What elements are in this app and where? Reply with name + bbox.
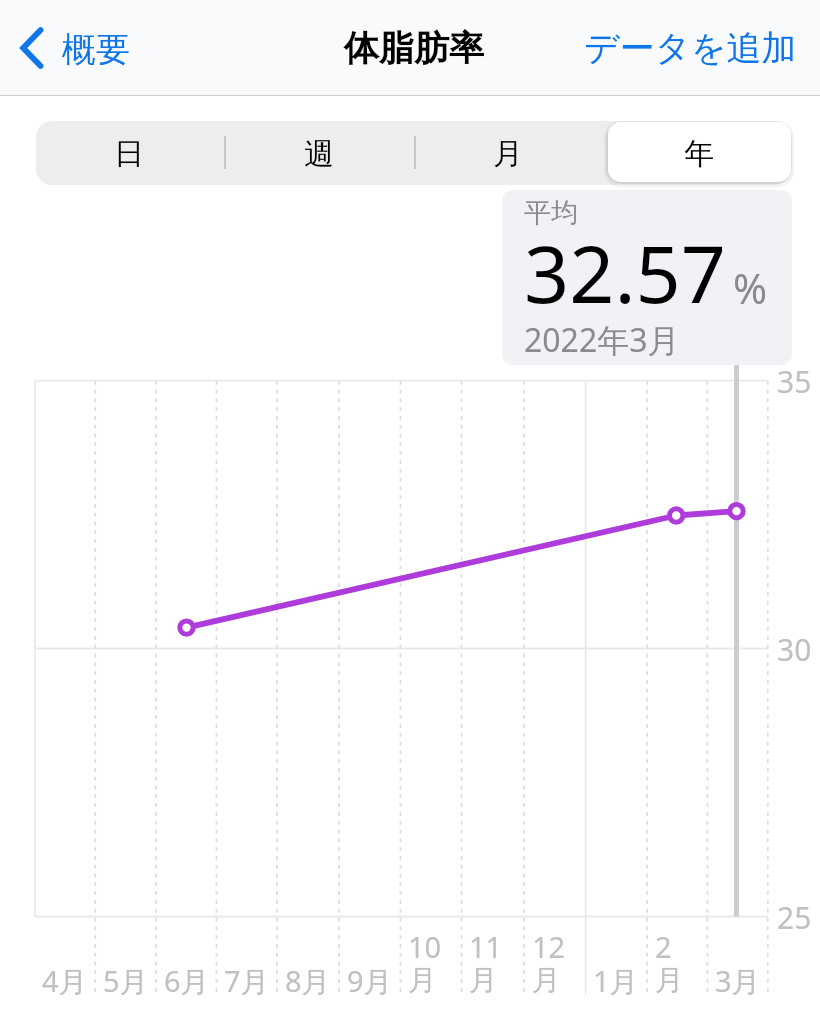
other: Back bbox=[17, 24, 53, 72]
staticText: % bbox=[733, 260, 768, 316]
button[interactable]: 週 bbox=[225, 121, 413, 185]
staticText: データを追加 bbox=[584, 26, 797, 70]
staticText: 6月 bbox=[164, 961, 220, 1024]
staticText: 11 月 bbox=[469, 927, 525, 1017]
button[interactable]: 月 bbox=[414, 121, 602, 185]
staticText: 1月 bbox=[593, 961, 649, 1024]
staticText: 平均 bbox=[524, 196, 578, 230]
staticText: 7月 bbox=[224, 961, 280, 1024]
staticText: 体脂肪率 bbox=[344, 26, 484, 70]
staticText: 25 bbox=[777, 897, 812, 938]
staticText: 30 bbox=[777, 629, 812, 670]
staticText: 3月 bbox=[715, 961, 771, 1024]
button[interactable]: 年 bbox=[605, 121, 793, 185]
button[interactable]: Back bbox=[6, 10, 142, 86]
staticText: 4月 bbox=[42, 961, 98, 1024]
staticText: 9月 bbox=[347, 961, 403, 1024]
button[interactable]: データを追加 bbox=[572, 10, 808, 86]
staticText: 日 bbox=[35, 135, 223, 173]
staticText: 年 bbox=[605, 135, 793, 173]
staticText: 8月 bbox=[285, 961, 341, 1024]
staticText: 10 月 bbox=[408, 927, 464, 1017]
staticText: 月 bbox=[414, 135, 602, 173]
staticText: 5月 bbox=[103, 961, 159, 1024]
staticText: 概要 bbox=[62, 28, 130, 71]
staticText: 2022年3月 bbox=[524, 318, 680, 362]
staticText: 週 bbox=[225, 135, 413, 173]
staticText: 12 月 bbox=[532, 927, 588, 1017]
staticText: 32.57 bbox=[524, 219, 726, 327]
staticText: 35 bbox=[777, 361, 812, 402]
button[interactable]: 日 bbox=[35, 121, 223, 185]
staticText: 2 月 bbox=[655, 927, 711, 1017]
